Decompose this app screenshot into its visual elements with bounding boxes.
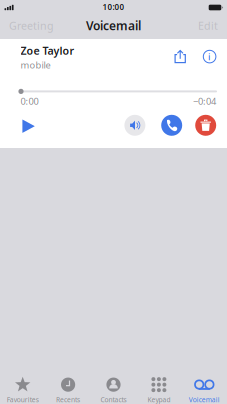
- staticText: mobile: [20, 59, 50, 71]
- button[interactable]: Recents: [45, 361, 91, 404]
- button[interactable]: Voicemail: [182, 361, 227, 404]
- button[interactable]: Edit: [194, 15, 222, 36]
- staticText: 0:00: [20, 95, 38, 107]
- staticText: Favourites: [7, 395, 39, 404]
- staticText: Greeting: [9, 18, 54, 33]
- staticText: 10:00: [102, 2, 124, 12]
- staticText: Zoe Taylor: [20, 44, 74, 58]
- staticText: Recents: [56, 395, 80, 404]
- staticText: −0:04: [193, 95, 216, 107]
- button[interactable]: Play: [22, 119, 35, 133]
- staticText: Voicemail: [189, 395, 220, 404]
- staticText: Voicemail: [86, 17, 141, 33]
- button[interactable]: Delete: [195, 115, 216, 136]
- button[interactable]: Call back: [161, 115, 182, 136]
- button[interactable]: Keypad: [136, 361, 182, 404]
- button[interactable]: Favourites: [0, 361, 45, 404]
- button[interactable]: Speaker: [124, 115, 145, 136]
- staticText: Edit: [198, 18, 218, 33]
- staticText: i: [208, 50, 211, 63]
- button[interactable]: Contacts: [91, 361, 136, 404]
- staticText: Keypad: [147, 395, 170, 404]
- staticText: Contacts: [100, 395, 126, 404]
- button[interactable]: Share: [172, 48, 188, 66]
- button[interactable]: Greeting: [5, 15, 58, 36]
- button[interactable]: Info: [202, 49, 217, 64]
